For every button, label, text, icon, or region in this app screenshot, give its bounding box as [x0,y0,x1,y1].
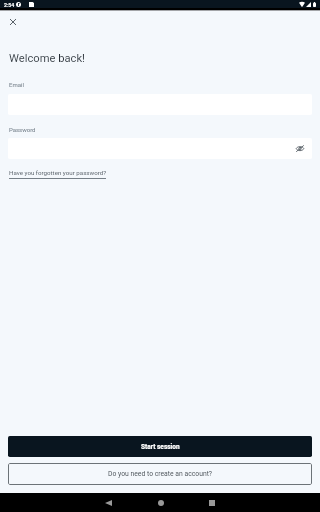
button[interactable]: Password input [8,138,312,159]
button[interactable]: Back [98,493,119,512]
button[interactable]: Start session [8,436,312,457]
staticText: Do you need to create an account? [108,470,213,478]
button[interactable]: Have you forgotten your password? [9,168,107,180]
staticText: Start session [141,443,180,451]
button[interactable]: Recent apps [201,493,222,512]
button[interactable]: Do you need to create an account? [8,463,312,485]
button[interactable]: Show password [293,142,306,155]
staticText: Password [9,126,36,133]
button[interactable]: Home [150,493,171,512]
button[interactable]: Close [4,13,21,30]
staticText: Welcome back! [9,52,85,65]
staticText: 2:54 [4,2,15,8]
staticText: Email [9,81,24,88]
staticText: Have you forgotten your password? [9,169,107,176]
